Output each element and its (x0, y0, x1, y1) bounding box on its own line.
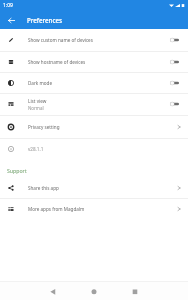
button[interactable]: Dark mode (0, 72, 188, 93)
staticText: Show custom name of devices (28, 37, 93, 43)
staticText: Support (7, 167, 27, 174)
staticText: Preferences (27, 16, 63, 24)
button[interactable]: Share this app (0, 177, 188, 198)
button[interactable]: Show custom name of devices (0, 29, 188, 51)
staticText: v28.1.1 (28, 146, 44, 152)
button[interactable]: Privacy setting (0, 115, 188, 138)
button[interactable]: List view (0, 93, 188, 115)
button[interactable]: v28.1.1 (0, 138, 188, 159)
staticText: Dark mode (28, 80, 52, 86)
button[interactable]: Show hostname of devices (0, 51, 188, 73)
button[interactable]: Navigate up (0, 11, 22, 29)
staticText: List view (28, 98, 47, 104)
staticText: Normal (28, 105, 44, 111)
staticText: More apps from Magdalm (28, 206, 85, 212)
staticText: Share this app (28, 185, 59, 191)
staticText: 1:09 (3, 2, 13, 9)
staticText: Show hostname of devices (28, 59, 86, 65)
staticText: Privacy setting (28, 124, 60, 130)
button[interactable]: More apps from Magdalm (0, 198, 188, 219)
